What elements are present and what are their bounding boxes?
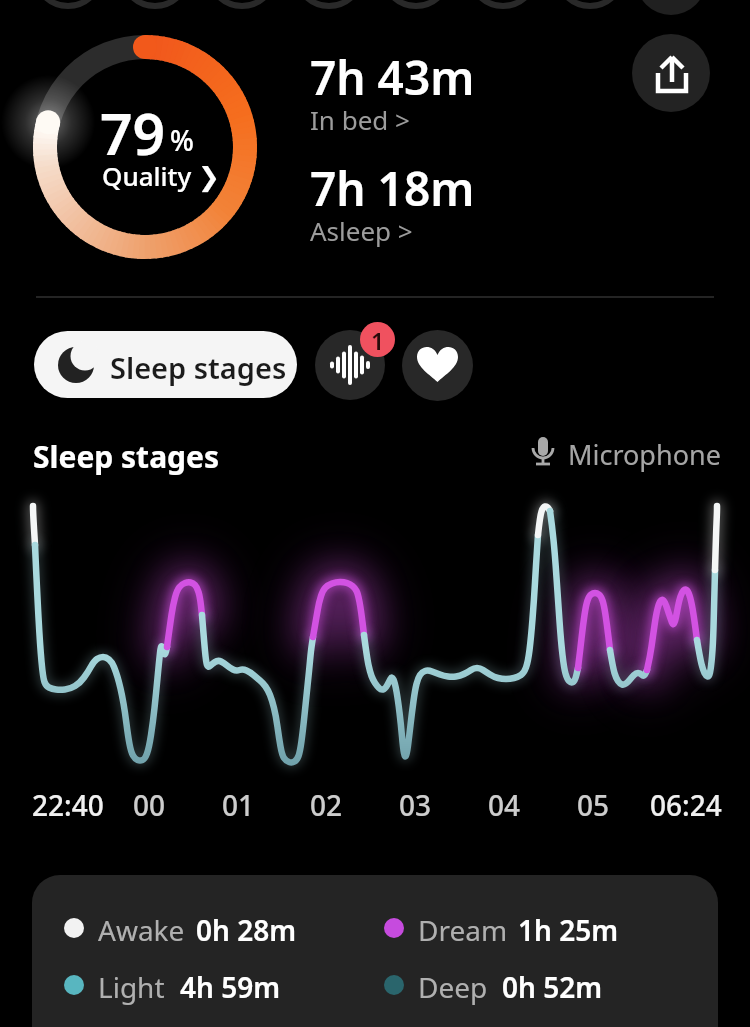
staticText: 00 (133, 786, 166, 824)
staticText: 04 (488, 786, 521, 824)
staticText: 1 (371, 325, 385, 356)
staticText: 02 (310, 786, 343, 824)
staticText: 22:40 (32, 786, 104, 824)
staticText: In bed > (310, 102, 410, 137)
staticText: Sleep stages (33, 436, 220, 477)
button[interactable]: Sleep stages (34, 331, 297, 398)
staticText: 05 (577, 786, 610, 824)
button[interactable]: In bed > (310, 102, 410, 137)
staticText: Sleep stages (110, 348, 287, 387)
button[interactable]: Quality ❯ (102, 158, 220, 193)
button[interactable] (632, 34, 710, 112)
button[interactable] (315, 330, 385, 400)
staticText: 1h 25m (518, 911, 619, 949)
staticText: 7h 18m (310, 157, 475, 220)
staticText: % (170, 121, 194, 159)
button[interactable]: Microphone (528, 436, 681, 473)
staticText: 0h 28m (196, 911, 297, 949)
staticText: 79 (100, 94, 166, 172)
staticText: 0h 52m (502, 968, 603, 1006)
staticText: 4h 59m (180, 968, 281, 1006)
staticText: Light (98, 968, 165, 1006)
staticText: 7h 43m (310, 46, 475, 109)
staticText: Awake (98, 911, 185, 949)
button[interactable]: Asleep > (310, 213, 413, 248)
button[interactable] (402, 330, 473, 401)
staticText: Microphone (568, 436, 721, 473)
staticText: Quality ❯ (102, 158, 220, 193)
staticText: 01 (222, 786, 255, 824)
staticText: Deep (418, 968, 488, 1006)
staticText: Dream (418, 911, 508, 949)
staticText: 06:24 (650, 786, 722, 824)
staticText: Asleep > (310, 213, 413, 248)
staticText: 03 (399, 786, 432, 824)
